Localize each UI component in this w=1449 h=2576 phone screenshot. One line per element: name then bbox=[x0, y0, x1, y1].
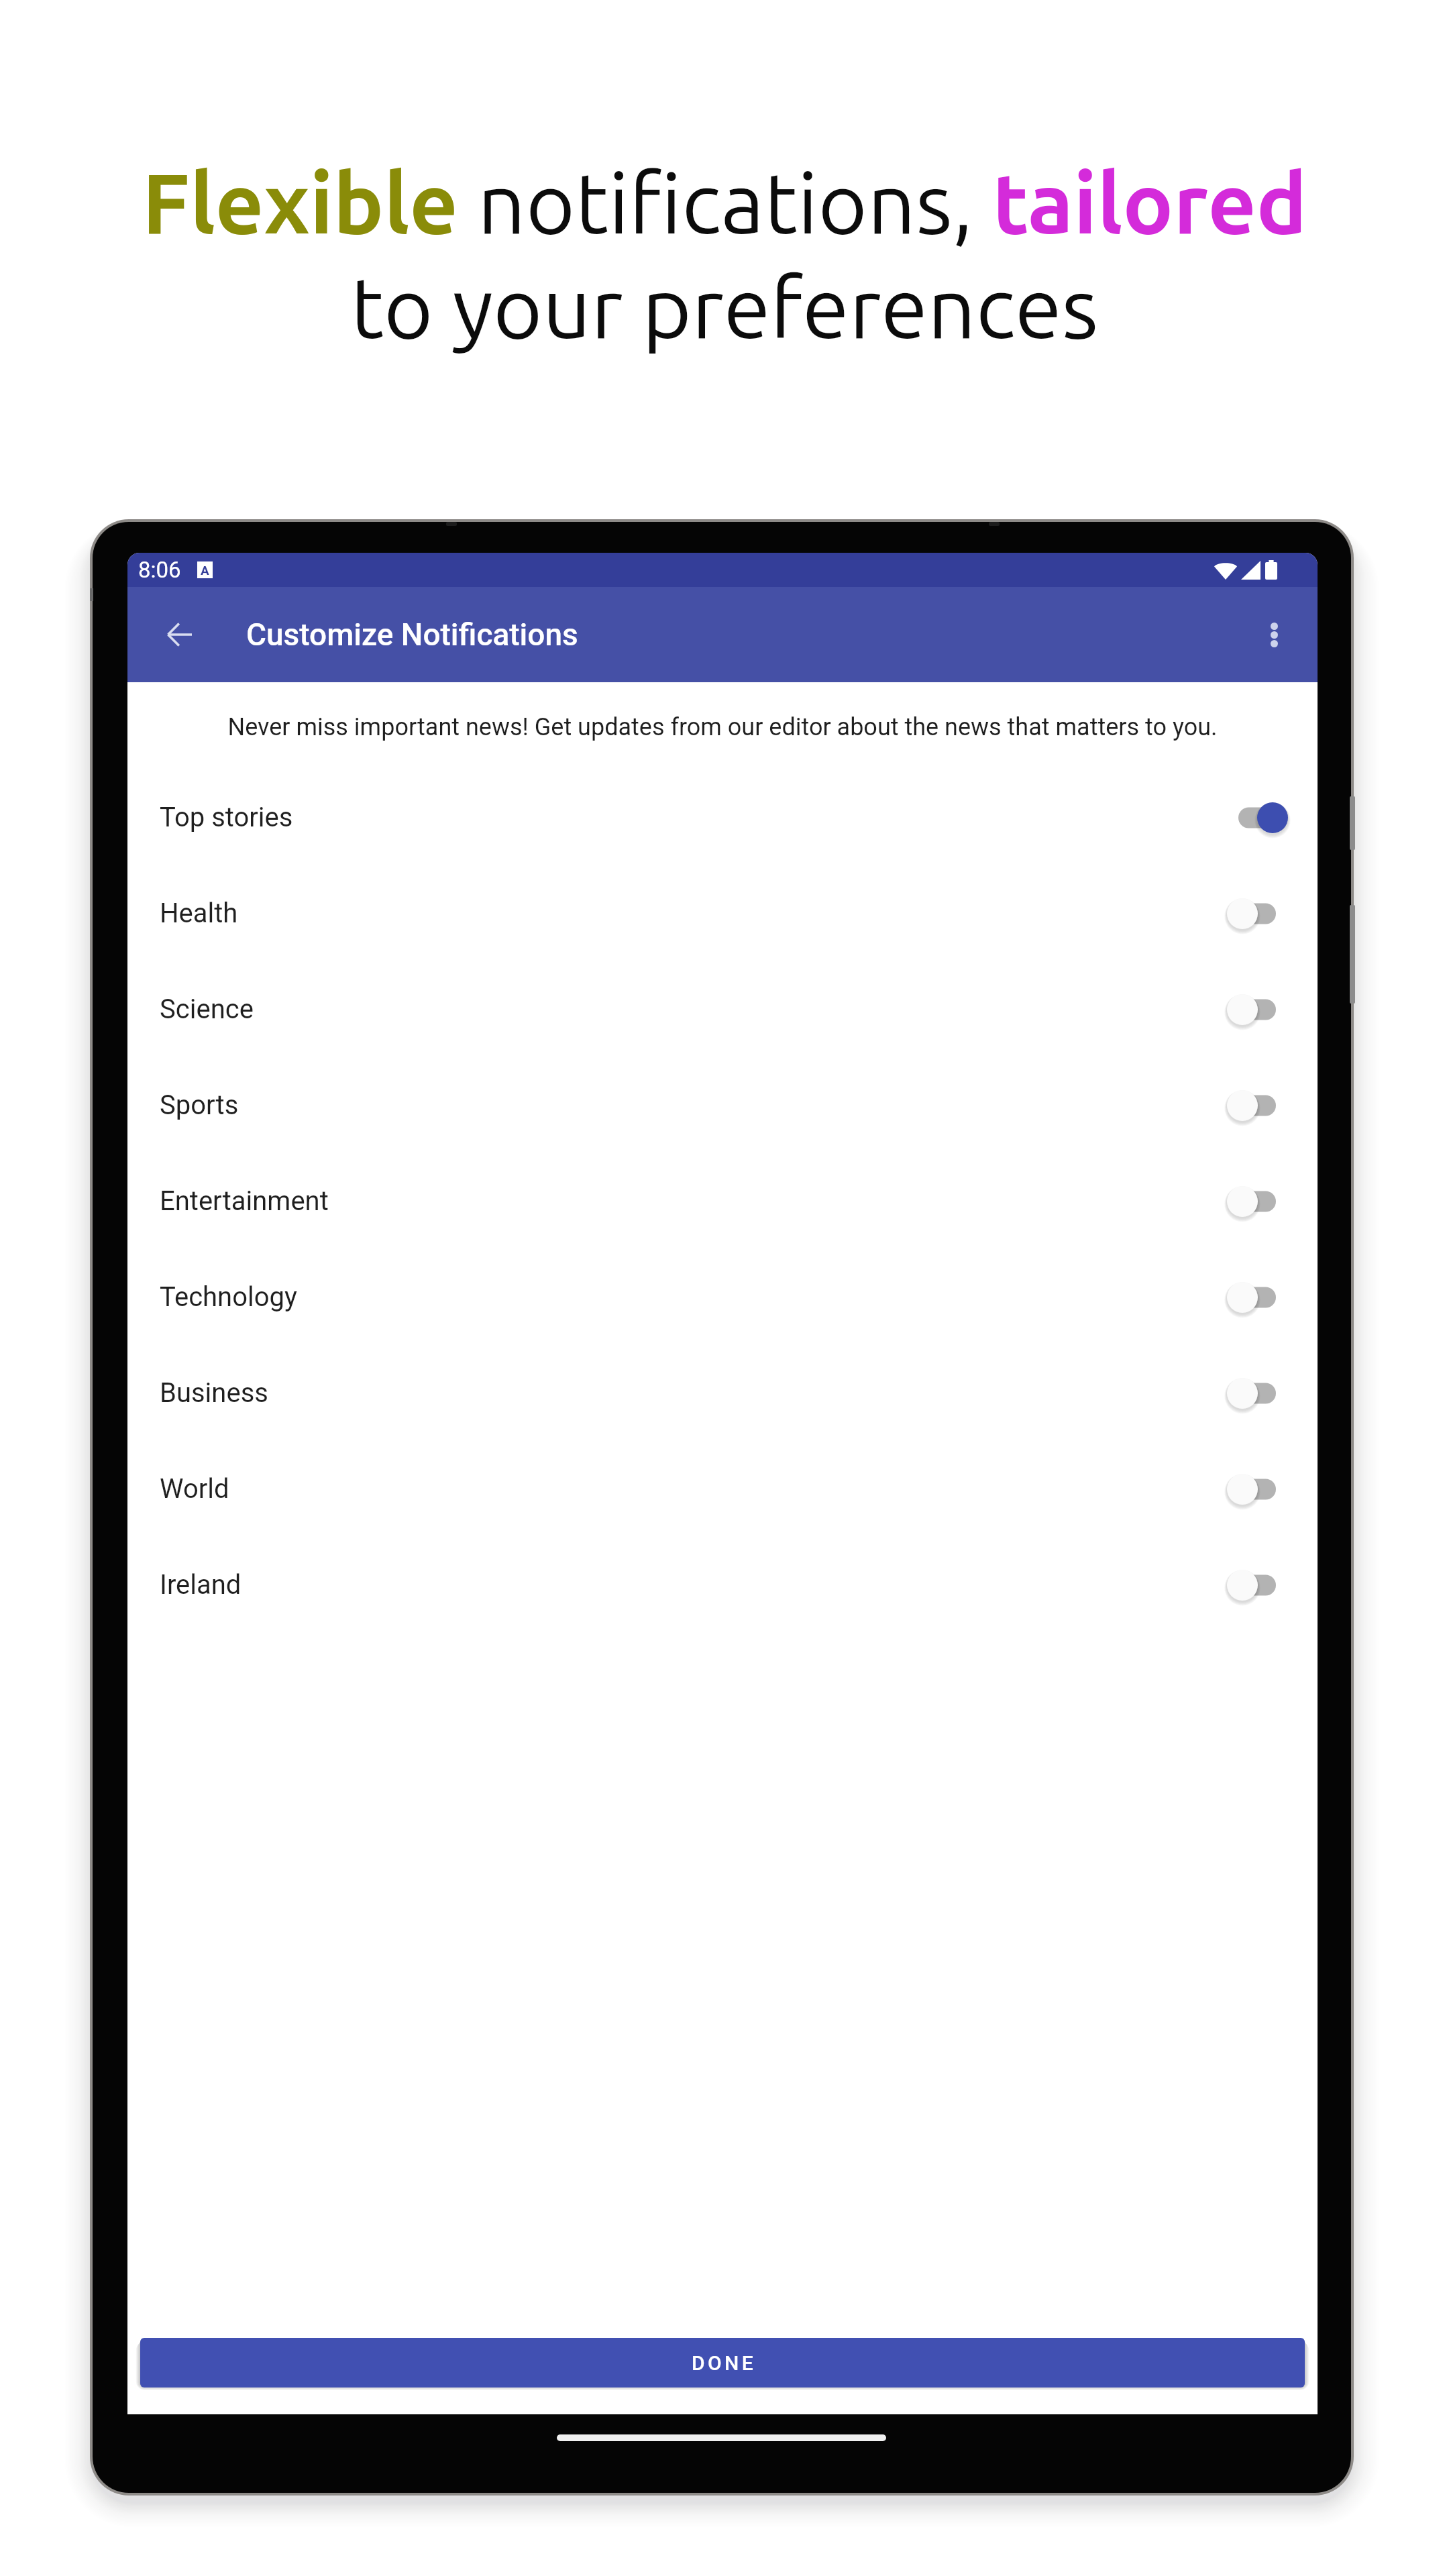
staticText: Top stories bbox=[160, 802, 293, 833]
staticText: A bbox=[201, 563, 209, 578]
button[interactable]: Technology notifications off bbox=[1225, 1277, 1289, 1318]
staticText: Sports bbox=[160, 1089, 239, 1121]
button[interactable]: World bbox=[127, 1441, 1318, 1537]
staticText: 8:06 bbox=[138, 557, 181, 583]
button[interactable]: Technology bbox=[127, 1249, 1318, 1345]
button[interactable]: Ireland bbox=[127, 1537, 1318, 1633]
button[interactable]: Ireland notifications off bbox=[1225, 1564, 1289, 1606]
staticText: World bbox=[160, 1473, 229, 1505]
staticText: Customize Notifications bbox=[246, 616, 578, 653]
button[interactable]: Entertainment notifications off bbox=[1225, 1181, 1289, 1222]
button[interactable]: Business notifications off bbox=[1225, 1373, 1289, 1414]
staticText: Technology bbox=[160, 1281, 297, 1313]
button[interactable]: Back bbox=[150, 605, 209, 664]
button[interactable]: Health bbox=[127, 865, 1318, 961]
button[interactable]: Entertainment bbox=[127, 1153, 1318, 1249]
button[interactable]: DONE bbox=[140, 2338, 1305, 2387]
staticText: Science bbox=[160, 994, 254, 1025]
button[interactable]: Health notifications off bbox=[1225, 893, 1289, 934]
staticText: Never miss important news! Get updates f… bbox=[127, 713, 1318, 741]
button[interactable]: Sports bbox=[127, 1057, 1318, 1153]
button[interactable]: Top stories notifications on bbox=[1225, 797, 1289, 839]
button[interactable]: World notifications off bbox=[1225, 1468, 1289, 1510]
staticText: Health bbox=[160, 898, 238, 929]
button[interactable]: More options bbox=[1244, 605, 1303, 664]
button[interactable]: Sports notifications off bbox=[1225, 1085, 1289, 1126]
staticText: DONE bbox=[692, 2351, 757, 2375]
button[interactable]: Business bbox=[127, 1345, 1318, 1441]
button[interactable]: Science notifications off bbox=[1225, 989, 1289, 1030]
staticText: Ireland bbox=[160, 1569, 241, 1601]
staticText: Flexible notifications, tailored to your… bbox=[0, 155, 1449, 354]
button[interactable]: Top stories bbox=[127, 769, 1318, 865]
button[interactable]: Science bbox=[127, 961, 1318, 1057]
staticText: Business bbox=[160, 1377, 268, 1409]
staticText: Entertainment bbox=[160, 1185, 329, 1217]
